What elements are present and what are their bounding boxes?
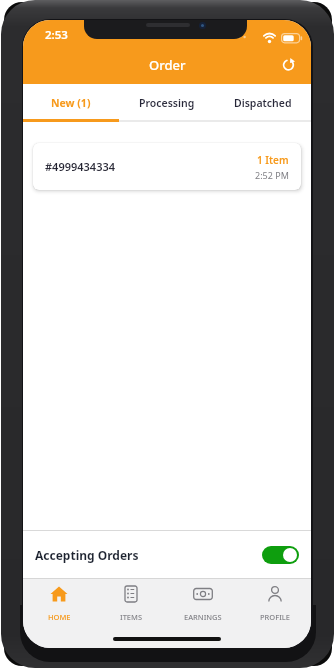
staticText: HOME — [48, 612, 71, 622]
button[interactable] — [282, 58, 296, 72]
staticText: Processing — [139, 96, 195, 110]
button[interactable]: New (1) — [23, 84, 119, 122]
staticText: #4999434334 — [45, 159, 116, 174]
staticText: 1 Item — [257, 153, 289, 167]
button[interactable]: PROFILE — [239, 585, 311, 622]
staticText: Order — [149, 56, 186, 74]
staticText: 2:53 — [45, 27, 68, 43]
button[interactable]: HOME — [23, 585, 95, 622]
staticText: ITEMS — [120, 612, 143, 622]
button[interactable]: #4999434334 — [33, 143, 301, 190]
button[interactable]: EARNINGS — [167, 585, 239, 622]
staticText: EARNINGS — [184, 612, 222, 622]
button[interactable]: ITEMS — [95, 585, 167, 622]
staticText: Dispatched — [234, 96, 292, 110]
staticText: 2:52 PM — [255, 169, 289, 181]
button[interactable]: Processing — [119, 84, 215, 122]
button[interactable] — [262, 546, 299, 564]
staticText: Accepting Orders — [35, 547, 139, 563]
staticText: PROFILE — [260, 612, 290, 622]
button[interactable]: Dispatched — [215, 84, 311, 122]
staticText: New (1) — [51, 96, 91, 110]
